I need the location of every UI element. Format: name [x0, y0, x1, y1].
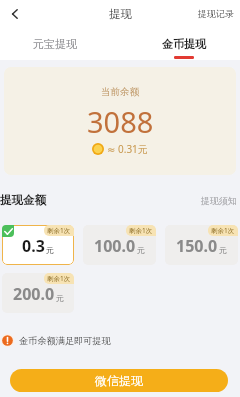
staticText: ≈ 0.31元 [107, 142, 148, 156]
button[interactable]: 微信提现 [10, 369, 228, 392]
button[interactable]: 100.0 [83, 225, 156, 265]
staticText: 200.0 [13, 283, 55, 305]
staticText: 150.0 [176, 235, 218, 257]
staticText: 金币提现 [162, 37, 206, 51]
staticText: 剩余1次 [211, 226, 235, 235]
staticText: 元 [56, 293, 64, 303]
button[interactable]: 0.3 [2, 225, 74, 265]
button[interactable]: 金币提现 [150, 27, 218, 60]
staticText: 剩余1次 [129, 226, 153, 235]
button[interactable]: Back [0, 0, 30, 27]
staticText: 提现 [109, 7, 132, 21]
staticText: 剩余1次 [47, 274, 71, 283]
staticText: 微信提现 [95, 373, 143, 388]
button[interactable]: 150.0 [165, 225, 238, 265]
button[interactable]: 元宝提现 [21, 27, 89, 60]
staticText: 元宝提现 [33, 37, 77, 51]
staticText: 元 [219, 245, 227, 255]
staticText: 0.3 [22, 235, 45, 257]
button[interactable]: 提现须知 [201, 195, 237, 206]
staticText: 100.0 [94, 235, 136, 257]
staticText: 提现记录 [198, 8, 234, 19]
staticText: 元 [46, 245, 54, 255]
staticText: 提现金额 [0, 193, 46, 207]
button[interactable]: 200.0 [2, 273, 74, 313]
button[interactable]: 提现记录 [0, 0, 240, 27]
staticText: 金币余额满足即可提现 [19, 335, 111, 347]
staticText: 当前余额 [101, 86, 139, 98]
staticText: 剩余1次 [47, 226, 71, 235]
staticText: 3088 [87, 102, 154, 141]
staticText: 元 [137, 245, 145, 255]
staticText: 提现须知 [201, 195, 237, 206]
